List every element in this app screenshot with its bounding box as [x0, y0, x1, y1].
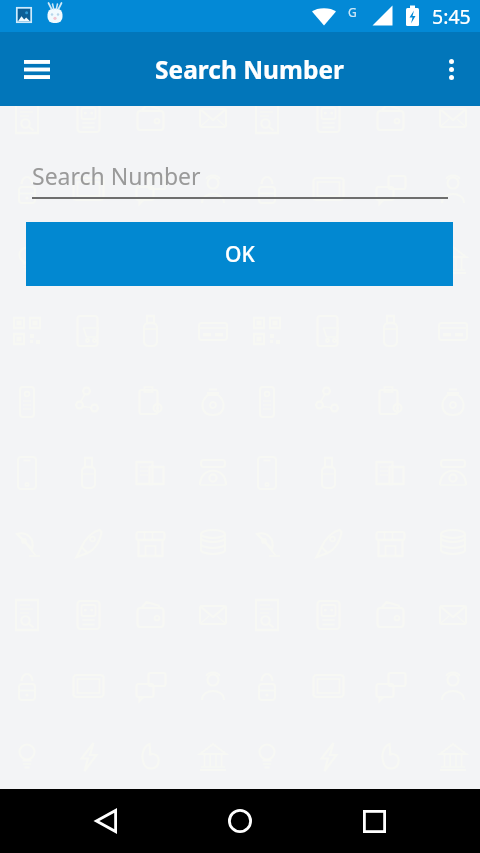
staticText: 5:45 [432, 3, 471, 30]
staticText: OK [225, 240, 255, 269]
staticText: G [348, 4, 357, 20]
button[interactable]: Back [78, 793, 134, 849]
button[interactable]: Recent apps [346, 793, 402, 849]
button[interactable]: More options [426, 44, 476, 94]
staticText: Search Number [155, 53, 344, 86]
button[interactable]: Search Number [32, 160, 448, 199]
button[interactable]: Open navigation drawer [12, 44, 62, 94]
button[interactable]: OK [26, 222, 453, 286]
staticText: Search Number [32, 160, 201, 191]
button[interactable]: Home [212, 793, 268, 849]
